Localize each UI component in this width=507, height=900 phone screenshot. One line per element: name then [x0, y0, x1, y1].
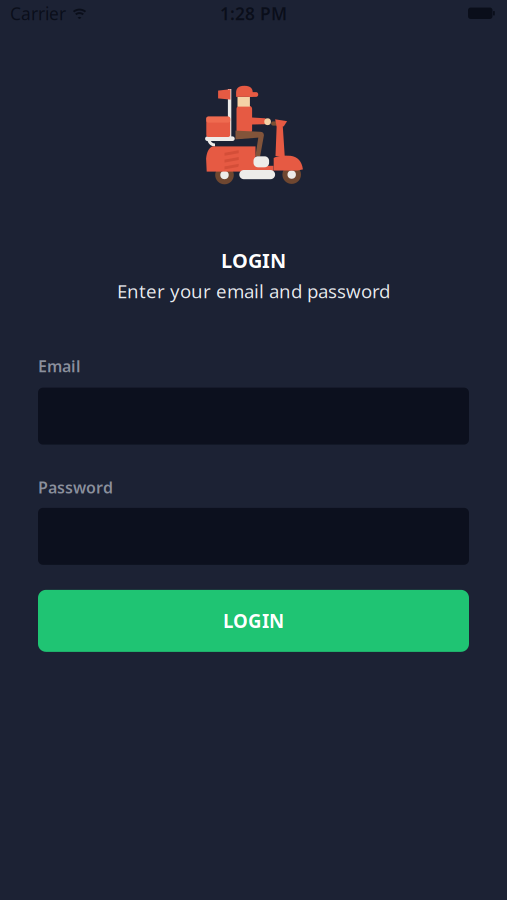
button[interactable]: LOGIN [38, 590, 469, 652]
staticText: Carrier [10, 2, 66, 25]
staticText: LOGIN [223, 608, 284, 633]
staticText: Email [38, 355, 81, 376]
staticText: 1:28 PM [220, 2, 287, 25]
staticText: Password [38, 477, 113, 498]
staticText: Enter your email and password [117, 279, 390, 303]
staticText: LOGIN [221, 247, 286, 274]
